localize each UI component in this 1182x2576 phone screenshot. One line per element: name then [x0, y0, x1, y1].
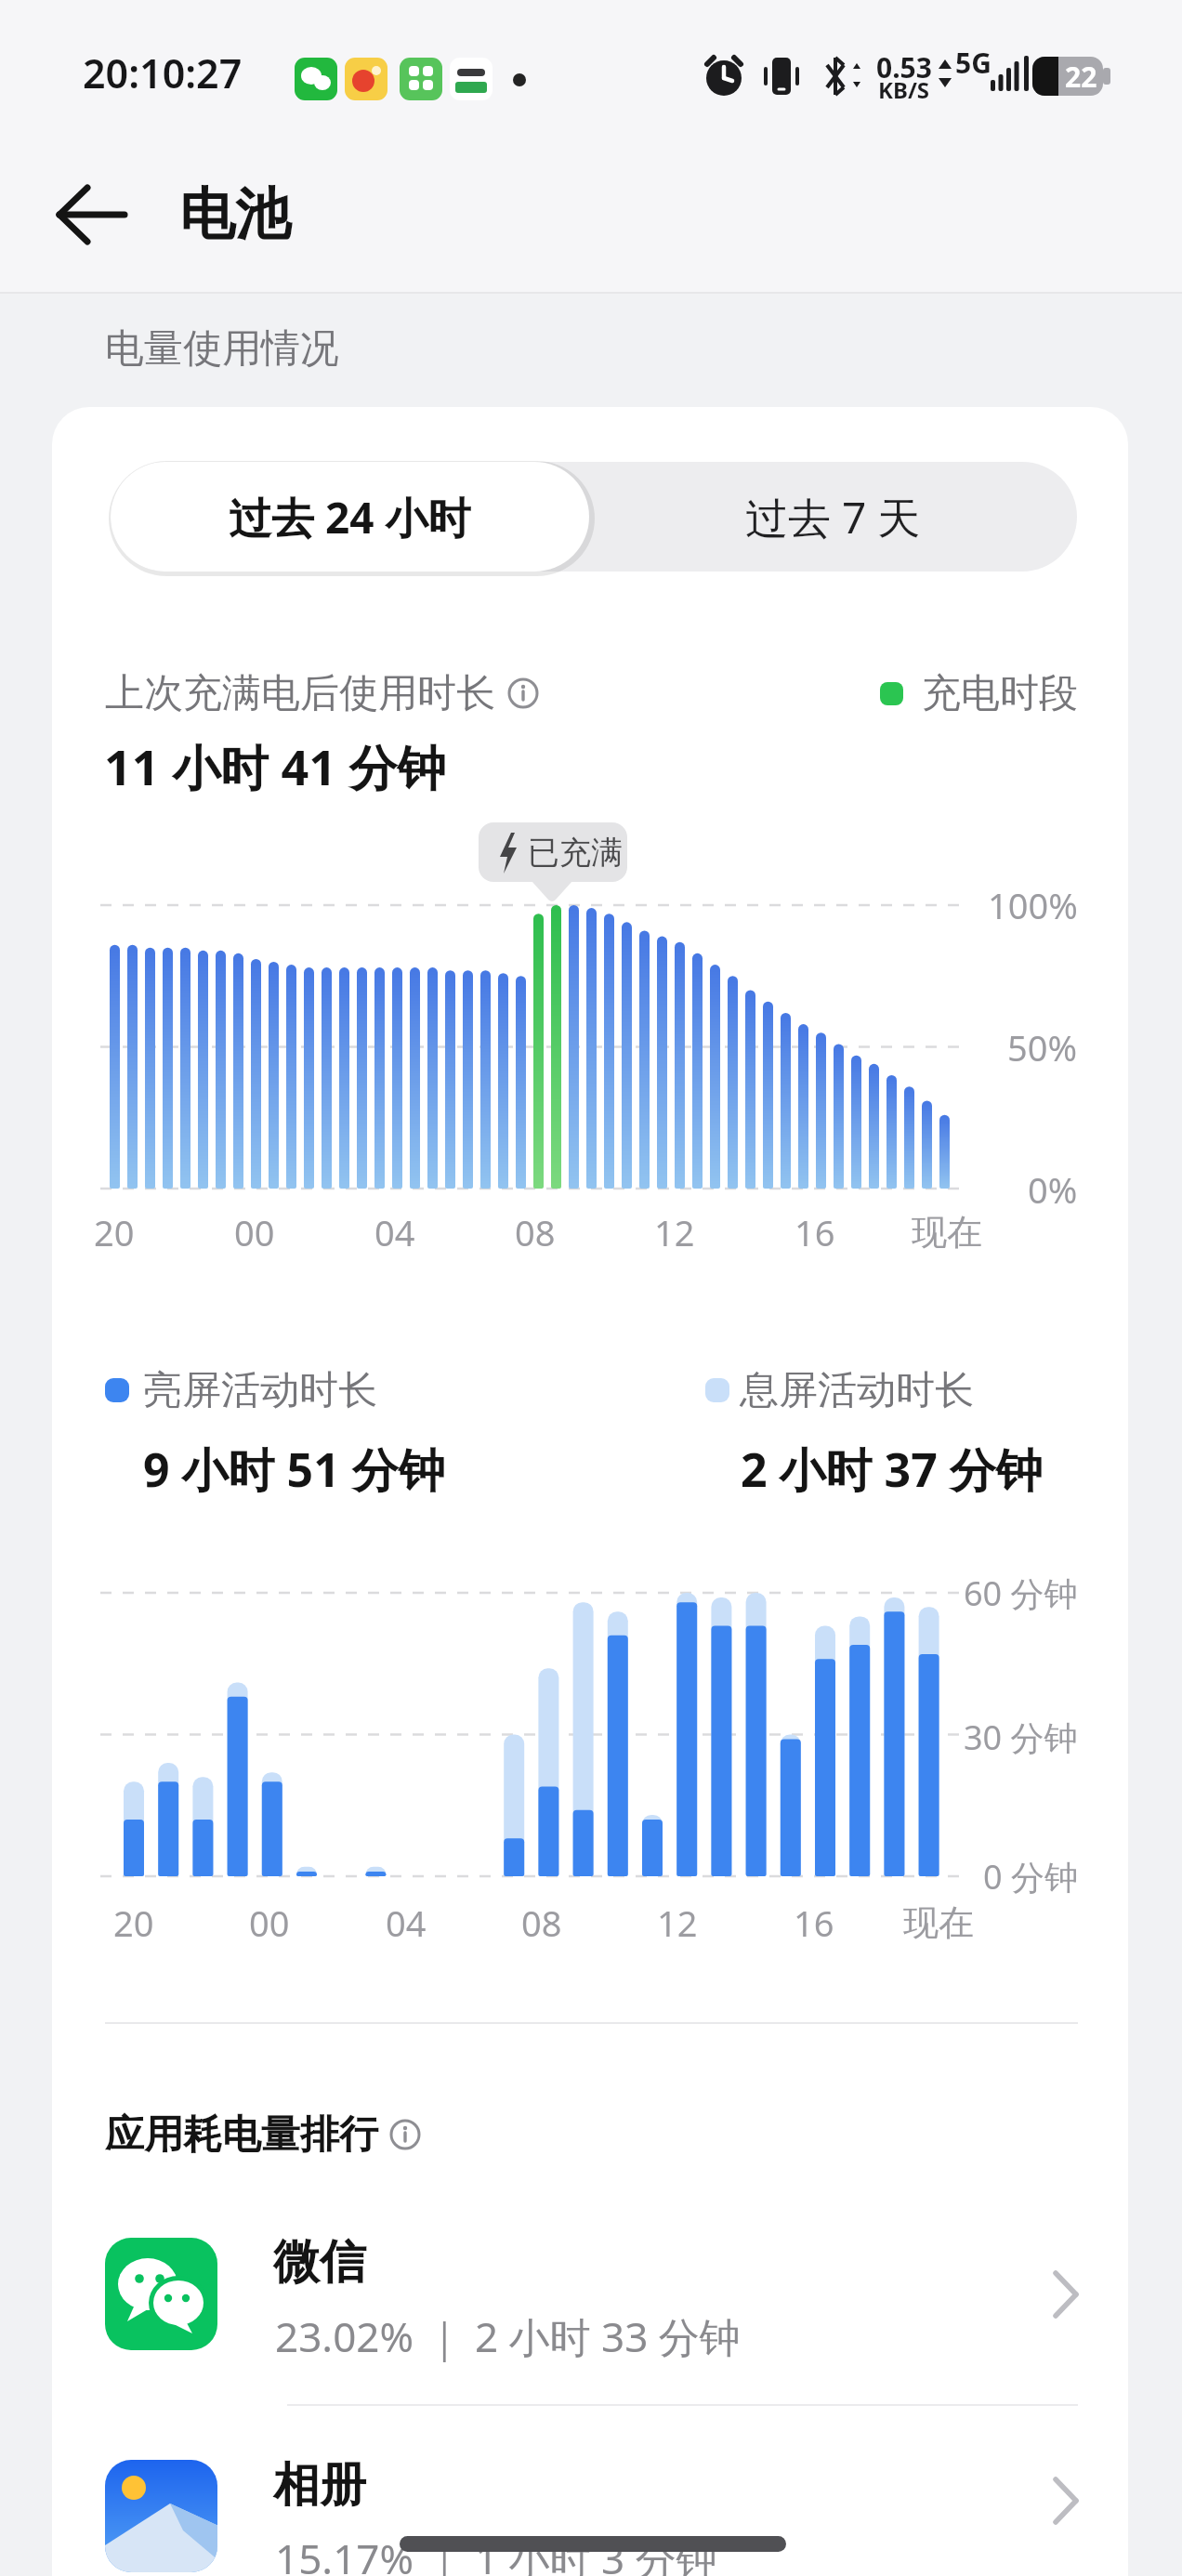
- staticText: 16: [794, 1899, 834, 1947]
- button[interactable]: [105, 2238, 1078, 2386]
- staticText: 15.17% ｜ 1 小时 3 分钟: [275, 2530, 717, 2576]
- staticText: 息屏活动时长: [740, 1366, 974, 1415]
- staticText: 微信: [273, 2233, 366, 2292]
- staticText: 30 分钟: [964, 1715, 1078, 1760]
- button[interactable]: [58, 184, 128, 245]
- staticText: 电量使用情况: [105, 324, 339, 374]
- staticText: 08: [521, 1899, 562, 1947]
- staticText: 现在: [903, 1900, 974, 1945]
- button[interactable]: [105, 2460, 1078, 2576]
- staticText: 过去 24 小时: [229, 488, 471, 546]
- button[interactable]: [589, 462, 1077, 572]
- staticText: 0%: [1028, 1165, 1078, 1214]
- staticText: 相册: [273, 2456, 366, 2515]
- staticText: 100%: [988, 881, 1078, 929]
- staticText: 08: [515, 1208, 556, 1256]
- staticText: 亮屏活动时长: [143, 1366, 377, 1415]
- staticText: 5G: [955, 44, 992, 82]
- staticText: 22: [1065, 58, 1097, 96]
- staticText: 2 小时 37 分钟: [741, 1438, 1043, 1501]
- staticText: 上次充满电后使用时长: [105, 669, 495, 718]
- staticText: 12: [654, 1208, 695, 1256]
- staticText: 00: [249, 1899, 290, 1947]
- staticText: 04: [386, 1899, 427, 1947]
- staticText: 16: [795, 1208, 835, 1256]
- staticText: 已充满: [528, 833, 623, 873]
- staticText: 20: [113, 1899, 154, 1947]
- staticText: 50%: [1007, 1023, 1078, 1071]
- staticText: 现在: [912, 1210, 982, 1255]
- staticText: 0 分钟: [983, 1854, 1078, 1899]
- staticText: 20:10:27: [83, 46, 243, 100]
- staticText: 20: [94, 1208, 135, 1256]
- staticText: 0.53: [876, 48, 932, 78]
- staticText: 9 小时 51 分钟: [143, 1438, 445, 1501]
- staticText: 应用耗电量排行: [105, 2110, 378, 2160]
- staticText: 过去 7 天: [745, 488, 921, 546]
- button[interactable]: [111, 462, 589, 572]
- staticText: 充电时段: [922, 669, 1078, 718]
- staticText: KB/S: [878, 74, 930, 100]
- staticText: 12: [657, 1899, 698, 1947]
- staticText: 60 分钟: [964, 1571, 1078, 1616]
- staticText: 00: [234, 1208, 275, 1256]
- staticText: 04: [374, 1208, 415, 1256]
- staticText: 11 小时 41 分钟: [104, 733, 446, 799]
- staticText: 23.02% ｜ 2 小时 33 分钟: [275, 2308, 741, 2364]
- staticText: 电池: [179, 179, 291, 250]
